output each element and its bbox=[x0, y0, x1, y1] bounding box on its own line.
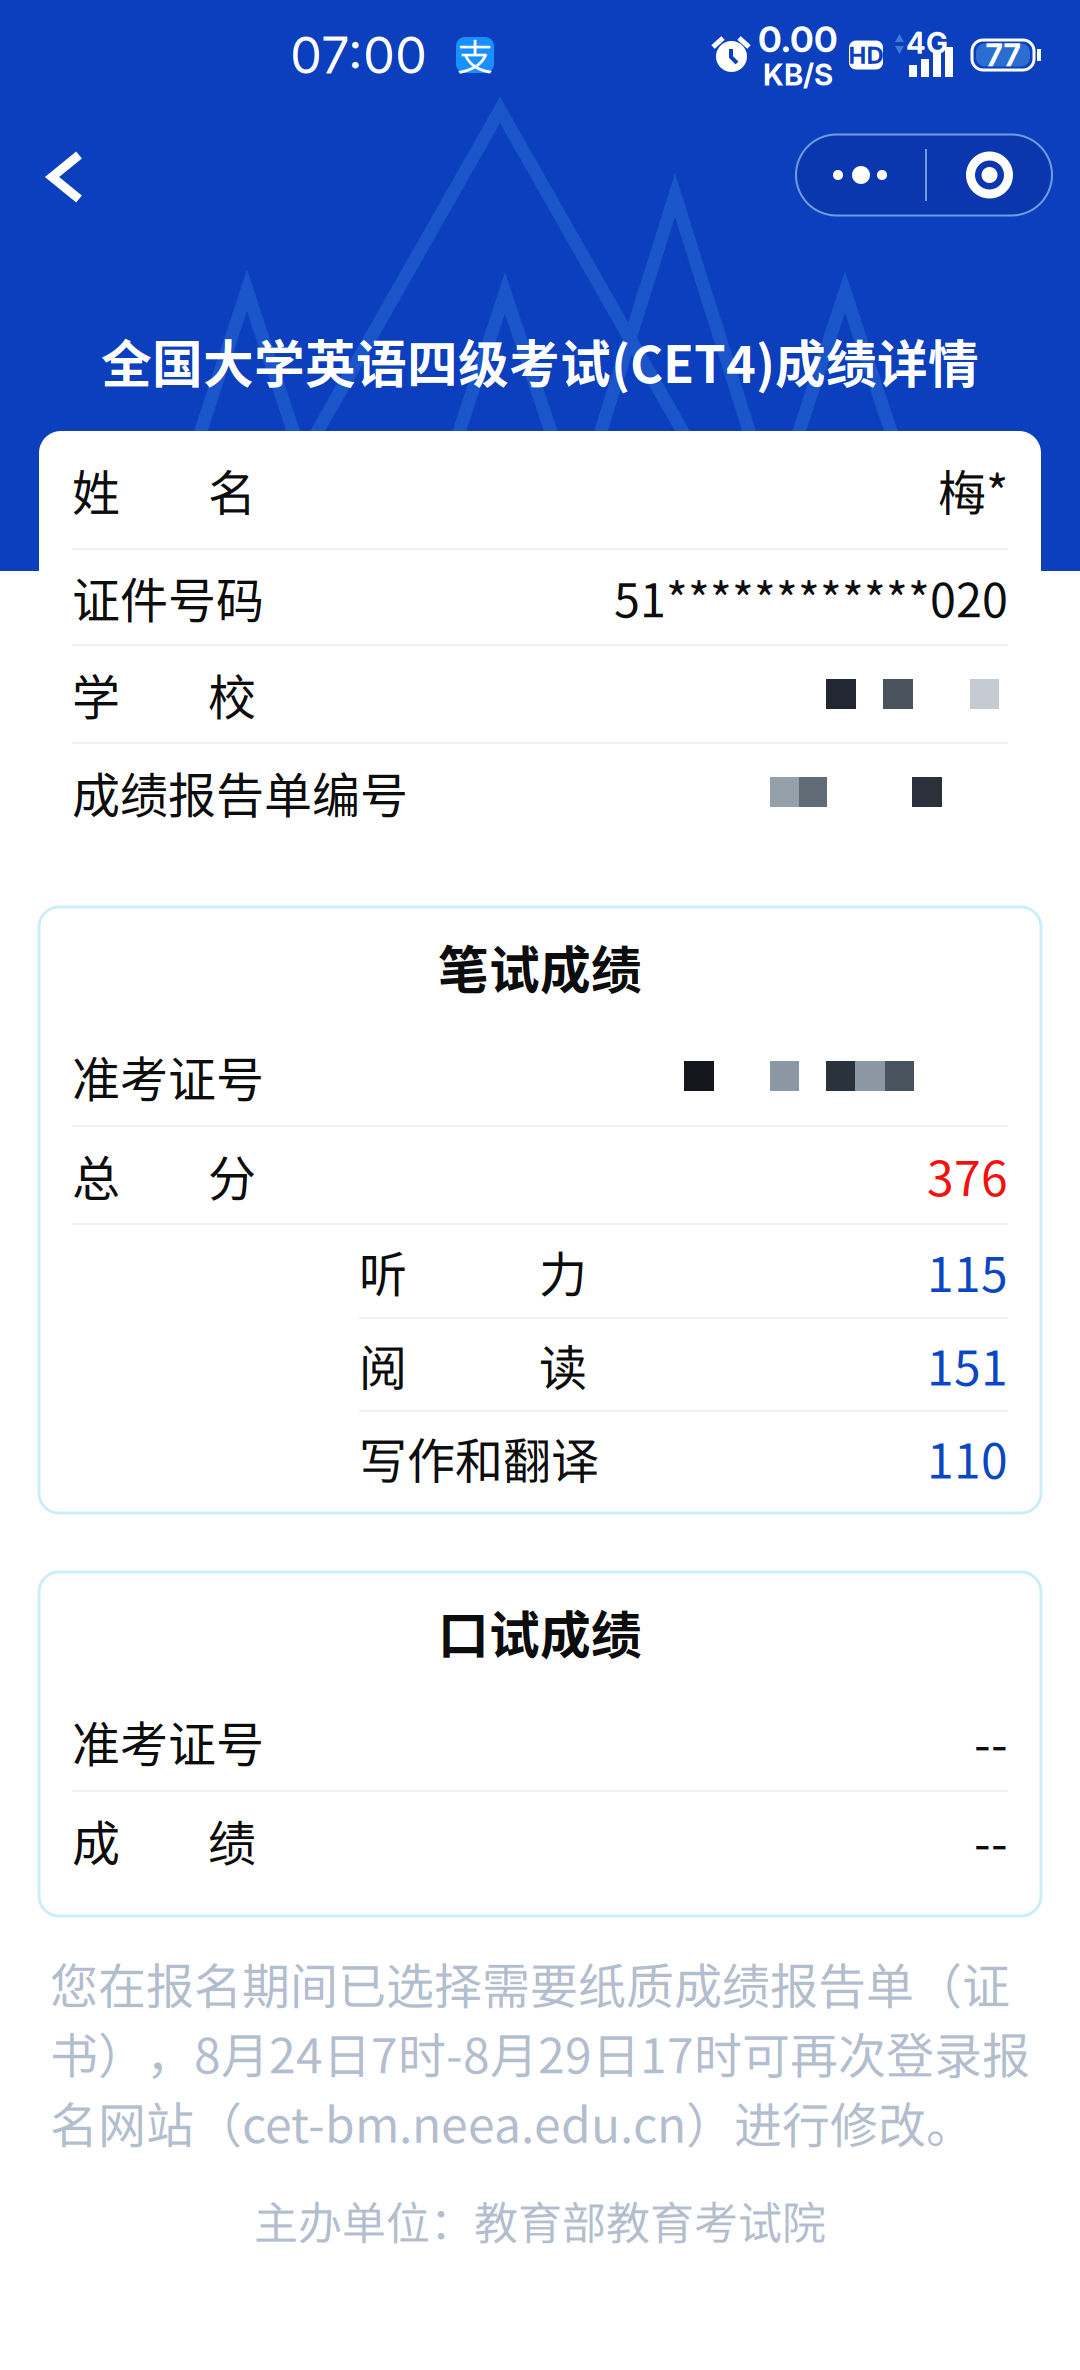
staticText: 115 bbox=[927, 1236, 1008, 1306]
button[interactable]: 更多 bbox=[796, 134, 925, 215]
staticText: 支 bbox=[457, 29, 493, 81]
staticText: 阅 读 bbox=[359, 1330, 587, 1399]
staticText: 您在报名期间已选择需要纸质成绩报告单（证书），8月24日7时-8月29日17时可… bbox=[50, 1948, 1030, 2156]
button[interactable]: 返回 bbox=[0, 110, 112, 222]
staticText: 0.00 bbox=[758, 17, 838, 61]
staticText: 笔试成绩 bbox=[438, 930, 642, 1004]
staticText: 110 bbox=[927, 1423, 1008, 1492]
staticText: 51************020 bbox=[614, 563, 1008, 631]
staticText: 成 绩 bbox=[72, 1805, 256, 1875]
staticText: 梅* bbox=[938, 455, 1008, 524]
staticText: HD bbox=[848, 40, 883, 69]
staticText: 4G bbox=[906, 25, 948, 61]
staticText: 口试成绩 bbox=[438, 1595, 642, 1669]
staticText: 151 bbox=[927, 1330, 1008, 1399]
staticText: KB/S bbox=[763, 57, 833, 92]
staticText: 全国大学英语四级考试(CET4)成绩详情 bbox=[101, 324, 979, 398]
staticText: 总 分 bbox=[72, 1140, 256, 1210]
staticText: 证件号码 bbox=[72, 562, 264, 632]
staticText: 写作和翻译 bbox=[359, 1423, 599, 1492]
staticText: 376 bbox=[927, 1140, 1008, 1210]
staticText: 07:00 bbox=[290, 24, 427, 86]
staticText: 77 bbox=[985, 36, 1020, 73]
staticText: 听 力 bbox=[359, 1236, 587, 1306]
staticText: 准考证号 bbox=[72, 1706, 264, 1776]
staticText: 成绩报告单编号 bbox=[72, 757, 408, 827]
staticText: 准考证号 bbox=[72, 1041, 264, 1111]
staticText: 主办单位：教育部教育考试院 bbox=[254, 2188, 826, 2252]
button[interactable]: 关闭 bbox=[927, 134, 1052, 215]
staticText: -- bbox=[974, 1706, 1008, 1776]
staticText: 姓 名 bbox=[72, 455, 256, 524]
staticText: -- bbox=[974, 1805, 1008, 1875]
staticText: 学 校 bbox=[72, 659, 256, 729]
